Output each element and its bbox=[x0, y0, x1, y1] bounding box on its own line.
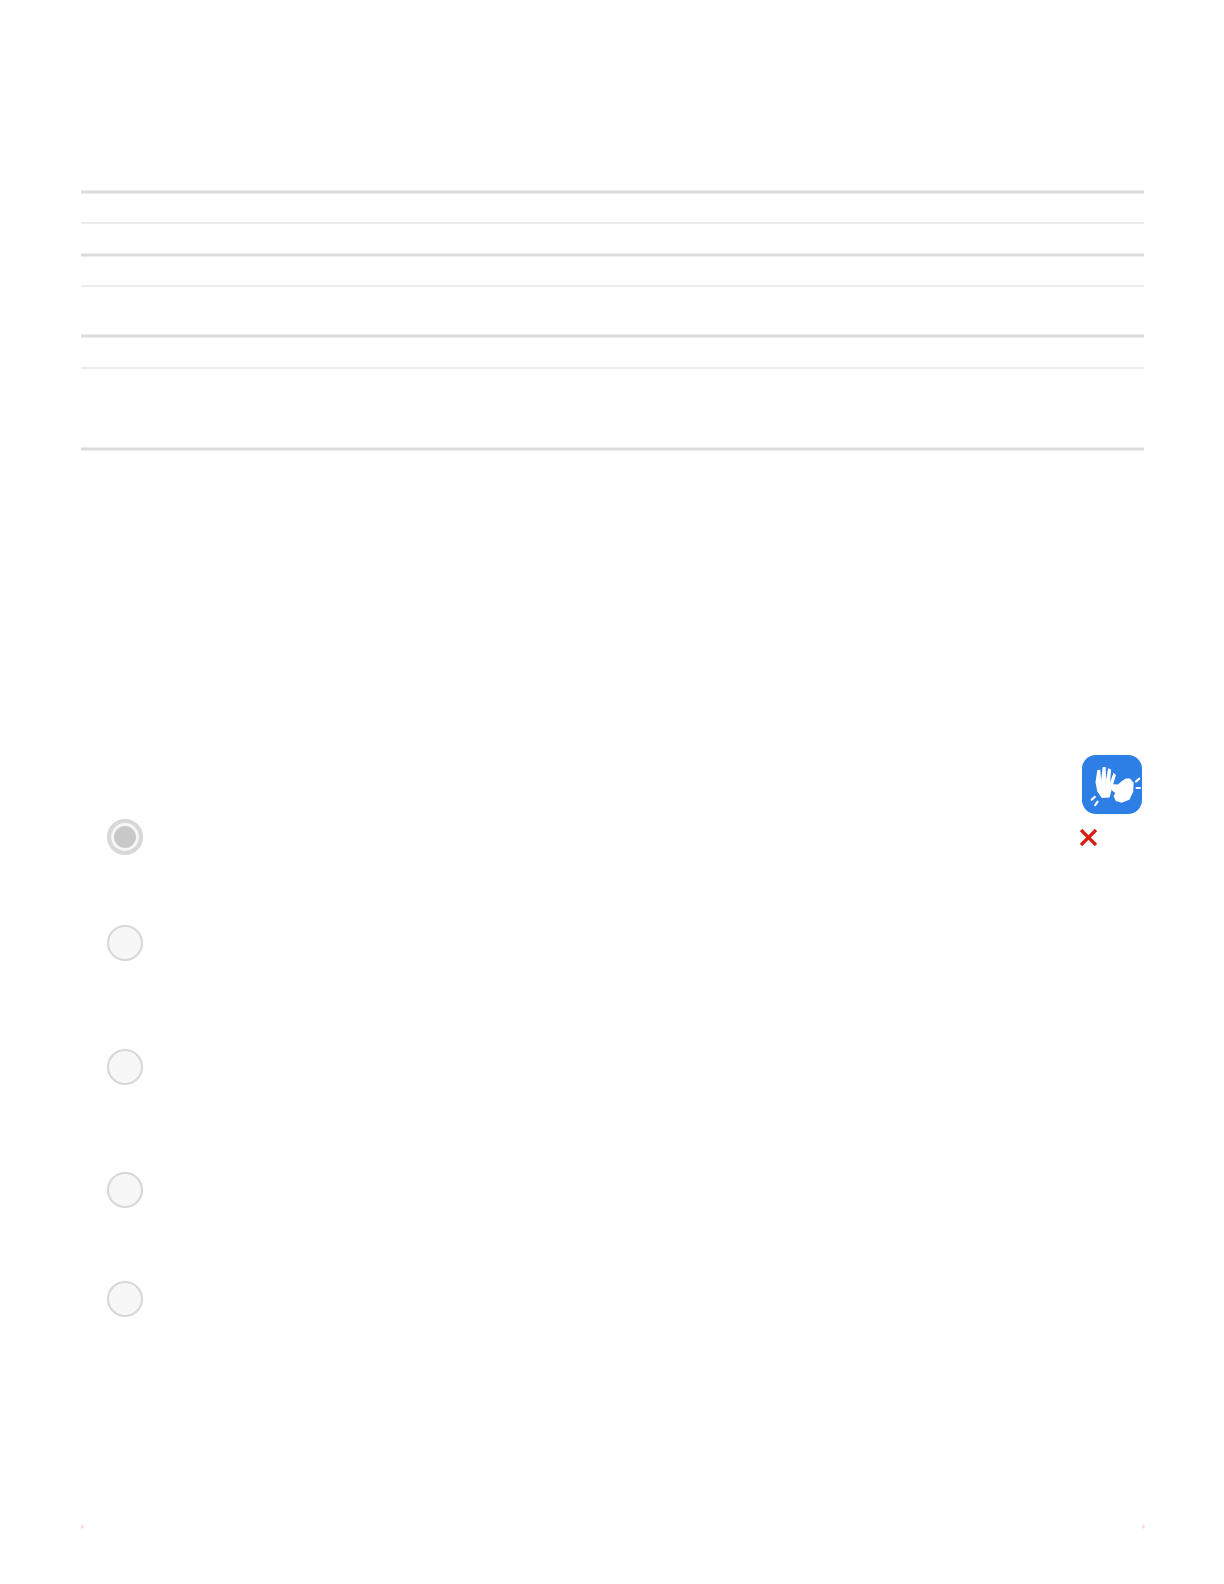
button[interactable]: Option 4 bbox=[105, 1170, 145, 1210]
button[interactable]: Option 2 bbox=[105, 923, 145, 963]
button[interactable]: Option 5 bbox=[105, 1279, 145, 1319]
button[interactable]: Option 3 bbox=[105, 1047, 145, 1087]
button[interactable]: Remove bbox=[1076, 825, 1101, 850]
button[interactable]: Sign language bbox=[1082, 755, 1142, 814]
button[interactable]: Option 1 bbox=[105, 817, 145, 857]
